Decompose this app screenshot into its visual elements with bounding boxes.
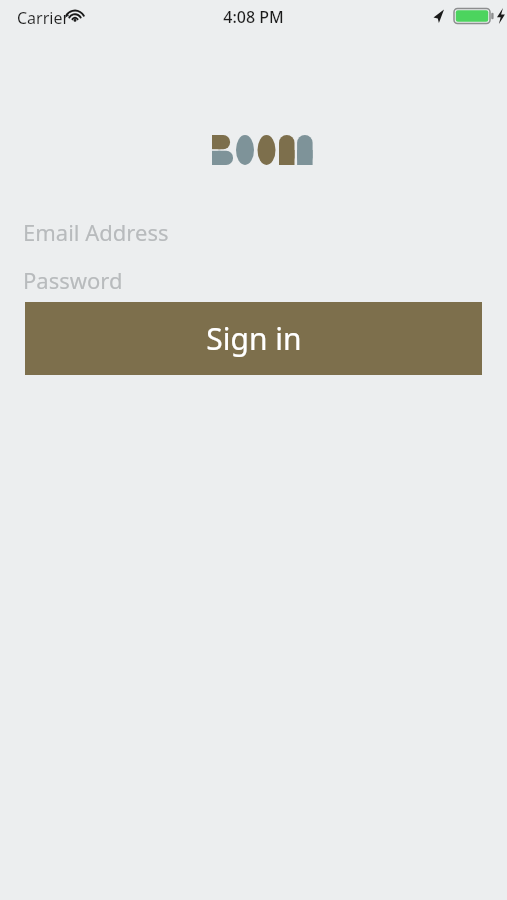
staticText: Carrier [17, 7, 70, 29]
staticText: Password [23, 265, 123, 295]
staticText: 4:08 PM [223, 6, 284, 28]
button[interactable]: Password [0, 257, 507, 303]
button[interactable]: Email Address [0, 209, 507, 255]
button[interactable]: Sign in [25, 302, 482, 375]
staticText: Email Address [23, 217, 169, 247]
staticText: Sign in [206, 318, 302, 359]
